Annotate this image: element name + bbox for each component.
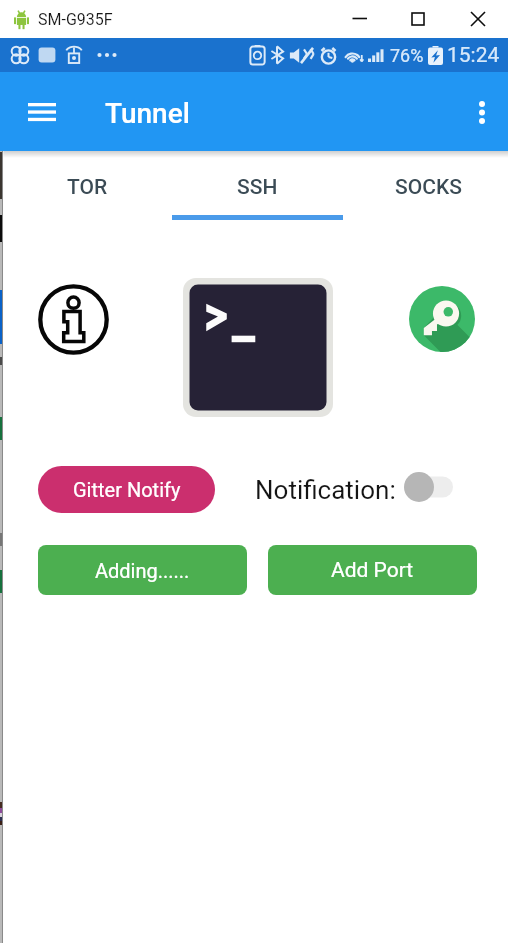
- button[interactable]: Adding......: [38, 545, 247, 595]
- button[interactable]: SSH: [172, 151, 343, 221]
- staticText: Add Port: [331, 558, 414, 583]
- button[interactable]: Gitter Notify: [38, 466, 215, 513]
- staticText: TOR: [67, 175, 108, 200]
- staticText: 76%: [390, 45, 424, 66]
- staticText: Adding......: [95, 559, 190, 582]
- button[interactable]: Maximize: [389, 0, 447, 38]
- staticText: SM-G935F: [38, 10, 113, 29]
- staticText: Tunnel: [105, 97, 190, 130]
- staticText: SSH: [237, 175, 278, 200]
- button[interactable]: Add Port: [268, 545, 477, 595]
- staticText: 15:24: [447, 43, 500, 68]
- button[interactable]: Minimize: [330, 0, 389, 38]
- button[interactable]: Terminal: [183, 278, 333, 417]
- button[interactable]: SOCKS: [343, 151, 508, 221]
- staticText: Notification:: [255, 475, 396, 505]
- button[interactable]: Notification toggle: [403, 471, 453, 503]
- button[interactable]: Key manager: [409, 286, 475, 352]
- button[interactable]: Close: [447, 0, 508, 38]
- button[interactable]: TOR: [2, 151, 173, 221]
- button[interactable]: Info: [36, 282, 111, 357]
- staticText: Gitter Notify: [73, 478, 181, 501]
- staticText: SOCKS: [395, 175, 462, 200]
- button[interactable]: More options: [458, 88, 506, 136]
- button[interactable]: Menu: [14, 84, 70, 140]
